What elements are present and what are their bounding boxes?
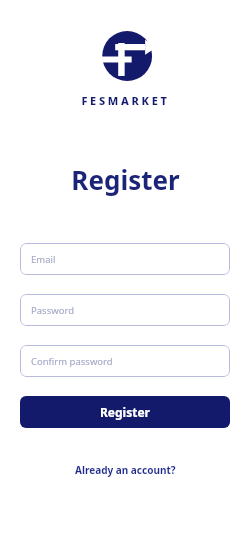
button[interactable]: Register [20,396,230,428]
staticText: Password [31,304,74,317]
button[interactable]: Password [20,294,230,326]
button[interactable]: Confirm password [20,345,230,377]
staticText: Already an account? [75,463,176,477]
button[interactable]: Email [20,243,230,275]
staticText: Register [71,162,180,197]
staticText: Register [100,404,150,420]
staticText: FESMARKET [81,93,170,108]
staticText: Email [31,253,56,266]
button[interactable]: Already an account? [65,458,186,482]
other: Fesmarket logo [89,27,161,85]
staticText: Confirm password [31,355,113,368]
